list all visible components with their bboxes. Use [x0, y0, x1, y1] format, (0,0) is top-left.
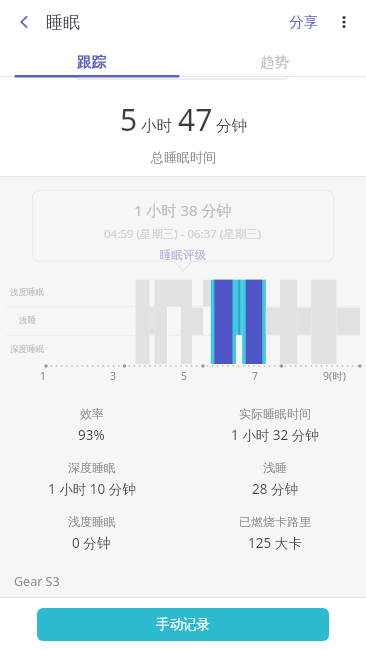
- staticText: 趋势: [260, 53, 289, 71]
- staticText: 浅度睡眠: [68, 514, 116, 529]
- staticText: 1 小时 38 分钟: [134, 200, 232, 220]
- staticText: 125 大卡: [248, 534, 302, 552]
- staticText: 1 小时 32 分钟: [231, 426, 319, 444]
- staticText: 分享: [289, 13, 318, 31]
- staticText: 浅睡: [263, 460, 287, 475]
- staticText: 47: [178, 99, 213, 140]
- staticText: 1: [40, 369, 47, 383]
- staticText: 分钟: [216, 116, 247, 136]
- staticText: 深度睡眠: [10, 344, 44, 355]
- staticText: 睡眠评级: [160, 248, 206, 262]
- staticText: 实际睡眠时间: [239, 406, 311, 421]
- staticText: 浅度睡眠: [10, 287, 44, 298]
- button[interactable]: 趋势: [183, 44, 366, 80]
- staticText: 睡眠: [46, 12, 80, 33]
- staticText: 7: [252, 369, 259, 383]
- staticText: 28 分钟: [252, 480, 298, 498]
- staticText: 手动记录: [156, 616, 210, 633]
- staticText: 3: [110, 369, 117, 383]
- button[interactable]: 跟踪: [0, 44, 183, 80]
- button[interactable]: 分享: [281, 5, 326, 39]
- staticText: 5: [181, 369, 188, 383]
- button[interactable]: Back: [4, 2, 44, 42]
- staticText: 效率: [80, 406, 104, 421]
- staticText: 总睡眠时间: [151, 149, 216, 165]
- staticText: 93%: [78, 426, 105, 444]
- staticText: 小时: [141, 116, 172, 136]
- staticText: 0 分钟: [72, 534, 111, 552]
- staticText: 深度睡眠: [68, 460, 116, 475]
- staticText: 5: [120, 99, 138, 140]
- staticText: 跟踪: [77, 53, 106, 71]
- button[interactable]: 1 小时 38 分钟: [32, 190, 334, 262]
- staticText: 9(时): [323, 369, 346, 383]
- button[interactable]: 手动记录: [37, 608, 329, 641]
- staticText: 1 小时 10 分钟: [48, 480, 136, 498]
- button[interactable]: More options: [326, 4, 362, 40]
- staticText: 04:59 (星期三) - 06:37 (星期三): [104, 226, 262, 242]
- staticText: 浅睡: [19, 315, 36, 326]
- staticText: Gear S3: [14, 573, 60, 590]
- staticText: 已燃烧卡路里: [239, 514, 311, 529]
